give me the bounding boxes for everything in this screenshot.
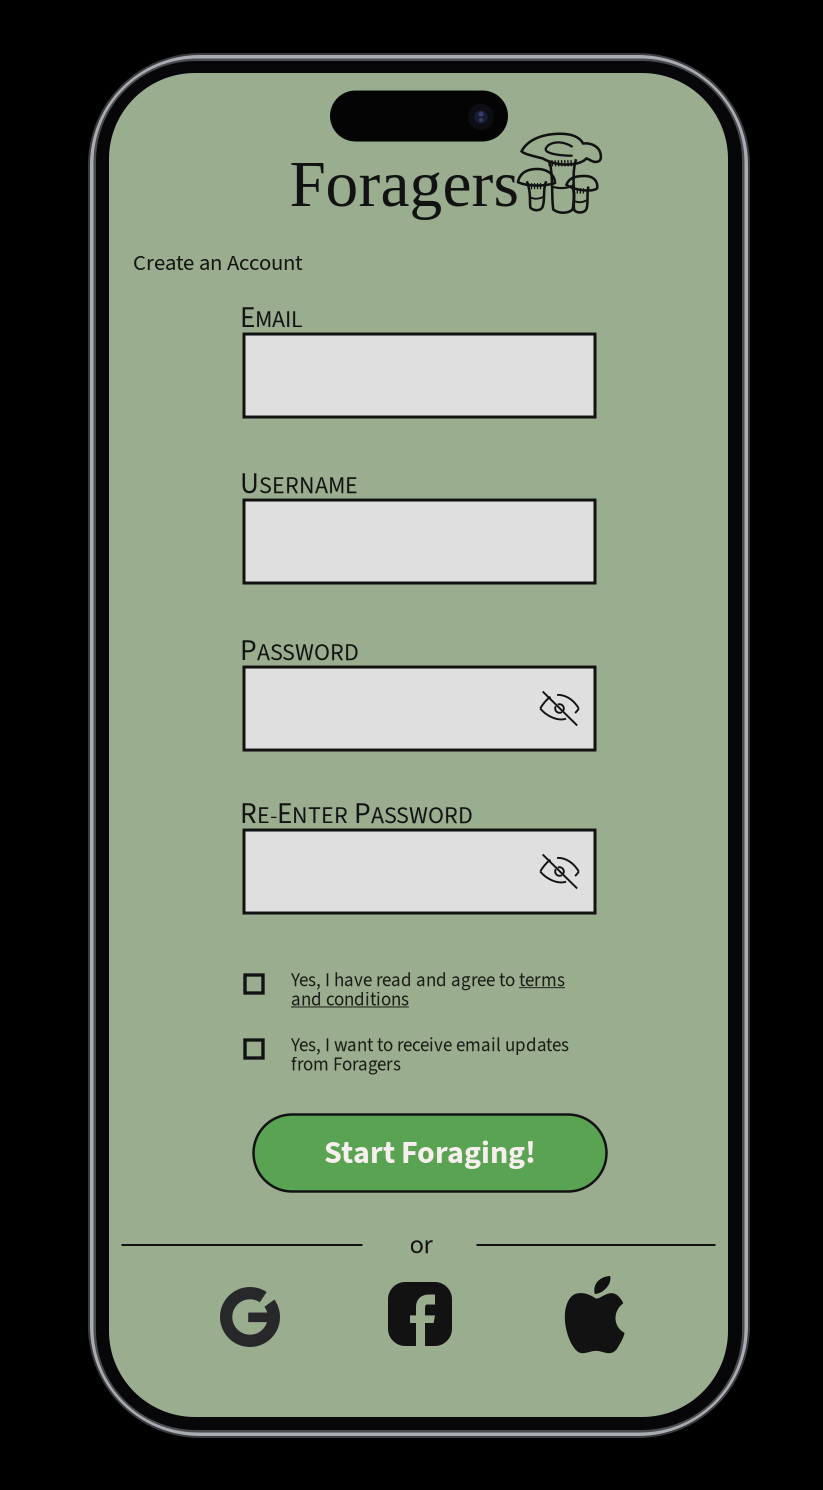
button[interactable]: Password: [244, 667, 595, 750]
staticText: USERNAME: [240, 464, 358, 504]
staticText: or: [409, 1226, 432, 1264]
button[interactable]: Yes, I have read and agree to terms and …: [109, 73, 460, 133]
button[interactable]: Sign in with Facebook: [388, 1282, 452, 1346]
staticText: RE-ENTER PASSWORD: [240, 794, 473, 834]
staticText: Yes, I have read and agree to terms and …: [291, 967, 565, 1013]
button[interactable]: Yes, I want to receive email updates fro…: [109, 73, 460, 133]
staticText: EMAIL: [240, 298, 303, 338]
staticText: Create an Account: [133, 247, 303, 279]
button[interactable]: Start Foraging!: [253, 1114, 606, 1191]
button[interactable]: Re-enter Password: [244, 830, 595, 913]
button[interactable]: Username: [244, 500, 595, 583]
button[interactable]: Sign in with Apple: [563, 1276, 628, 1354]
staticText: Yes, I want to receive email updates fro…: [291, 1032, 569, 1078]
staticText: Start Foraging!: [324, 1130, 536, 1176]
staticText: Foragers: [289, 148, 518, 220]
button[interactable]: Sign in with Google: [220, 1287, 280, 1347]
button[interactable]: Email: [244, 334, 595, 417]
staticText: PASSWORD: [240, 631, 359, 671]
